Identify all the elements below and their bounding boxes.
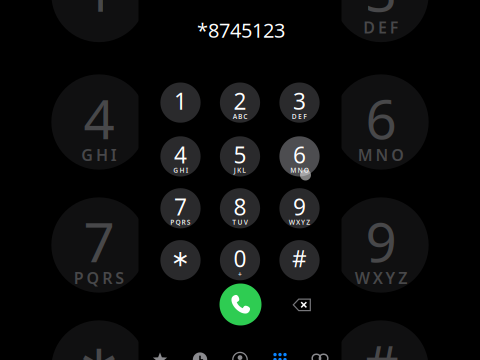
staticText: K [237,166,241,175]
staticText: Q [175,218,180,227]
staticText: W [289,218,295,227]
button[interactable]: Contacts [220,352,260,360]
staticText: 5 [233,140,246,170]
staticText: 1 [83,0,114,27]
staticText: Z [398,267,407,288]
button[interactable]: 8 [206,174,274,242]
button[interactable]: # [265,226,334,294]
staticText: 4 [83,82,114,154]
staticText: Y [385,267,395,288]
staticText: U [237,218,242,227]
staticText: X [373,267,383,288]
staticText: # [363,328,398,360]
staticText: T [222,267,231,288]
button[interactable]: Keypad [260,352,300,360]
staticText: 7 [174,192,187,222]
staticText: B [235,17,246,38]
button[interactable]: Recents [180,352,220,360]
staticText: 0 [233,243,246,274]
staticText: 1 [174,86,187,116]
staticText: N [297,166,302,175]
staticText: # [292,243,307,274]
staticText: G [173,166,178,175]
staticText: ∗ [76,333,122,360]
staticText: G [81,144,93,165]
staticText: U [233,267,245,288]
button[interactable]: Favorites [140,352,180,360]
button[interactable]: 3 [300,0,462,75]
staticText: 0 [224,328,255,360]
staticText: D [292,112,297,121]
button[interactable]: 5 [159,41,321,203]
button[interactable]: 9 [300,164,462,326]
staticText: J [234,166,236,175]
staticText: Y [301,218,305,227]
button[interactable]: 2 [159,0,321,75]
staticText: 2 [224,0,255,27]
staticText: 9 [365,205,396,277]
button[interactable]: ∗ [18,287,180,360]
staticText: E [298,112,302,121]
button[interactable]: 8 [159,164,321,326]
button[interactable]: ∗ [146,226,215,294]
staticText: 7 [83,205,114,277]
button[interactable]: 1 [146,68,215,137]
staticText: O [391,144,404,165]
staticText: C [249,17,259,38]
button[interactable]: Call [219,283,261,325]
staticText: C [243,112,247,121]
staticText: R [182,218,186,227]
staticText: 2 [233,86,246,116]
staticText: M [358,144,373,165]
button[interactable]: 1 [18,0,180,75]
staticText: 4 [174,140,187,170]
staticText: I [186,166,188,175]
button[interactable]: Delete [287,292,317,318]
staticText: A [221,17,232,38]
button[interactable]: 4 [18,41,180,203]
staticText: 6 [365,82,396,154]
button[interactable]: 9 [265,174,334,242]
button[interactable]: 6 [300,41,462,203]
staticText: O [304,166,309,175]
staticText: K [233,144,243,165]
button[interactable]: 2 [206,68,274,137]
staticText: W [355,267,370,288]
staticText: 6 [293,140,306,170]
button[interactable]: 7 [18,164,180,326]
button[interactable]: 0 [159,287,321,360]
staticText: E [378,17,387,38]
staticText: A [233,112,237,121]
staticText: S [187,218,191,227]
staticText: H [179,166,184,175]
button[interactable]: 7 [146,174,215,242]
button[interactable]: 3 [265,68,334,137]
button[interactable]: 6 [265,122,334,190]
staticText: M [290,166,296,175]
staticText: F [303,112,307,121]
staticText: ∗ [171,246,190,271]
staticText: T [232,218,236,227]
staticText: Z [306,218,310,227]
staticText: I [111,144,117,165]
staticText: H [96,144,108,165]
button[interactable]: 5 [206,122,274,190]
staticText: V [244,218,248,227]
staticText: P [74,267,84,288]
staticText: *8745123 [197,17,285,43]
staticText: 5 [224,82,255,154]
staticText: Q [87,267,100,288]
button[interactable]: 0 [206,226,274,294]
button[interactable]: # [300,287,462,360]
staticText: X [296,218,300,227]
staticText: S [115,267,124,288]
button[interactable]: Voicemail [300,352,340,360]
staticText: F [390,17,399,38]
staticText: V [248,267,258,288]
staticText: D [363,17,375,38]
button[interactable]: 4 [146,122,215,190]
staticText: P [170,218,174,227]
staticText: N [375,144,388,165]
staticText: 3 [293,86,306,116]
